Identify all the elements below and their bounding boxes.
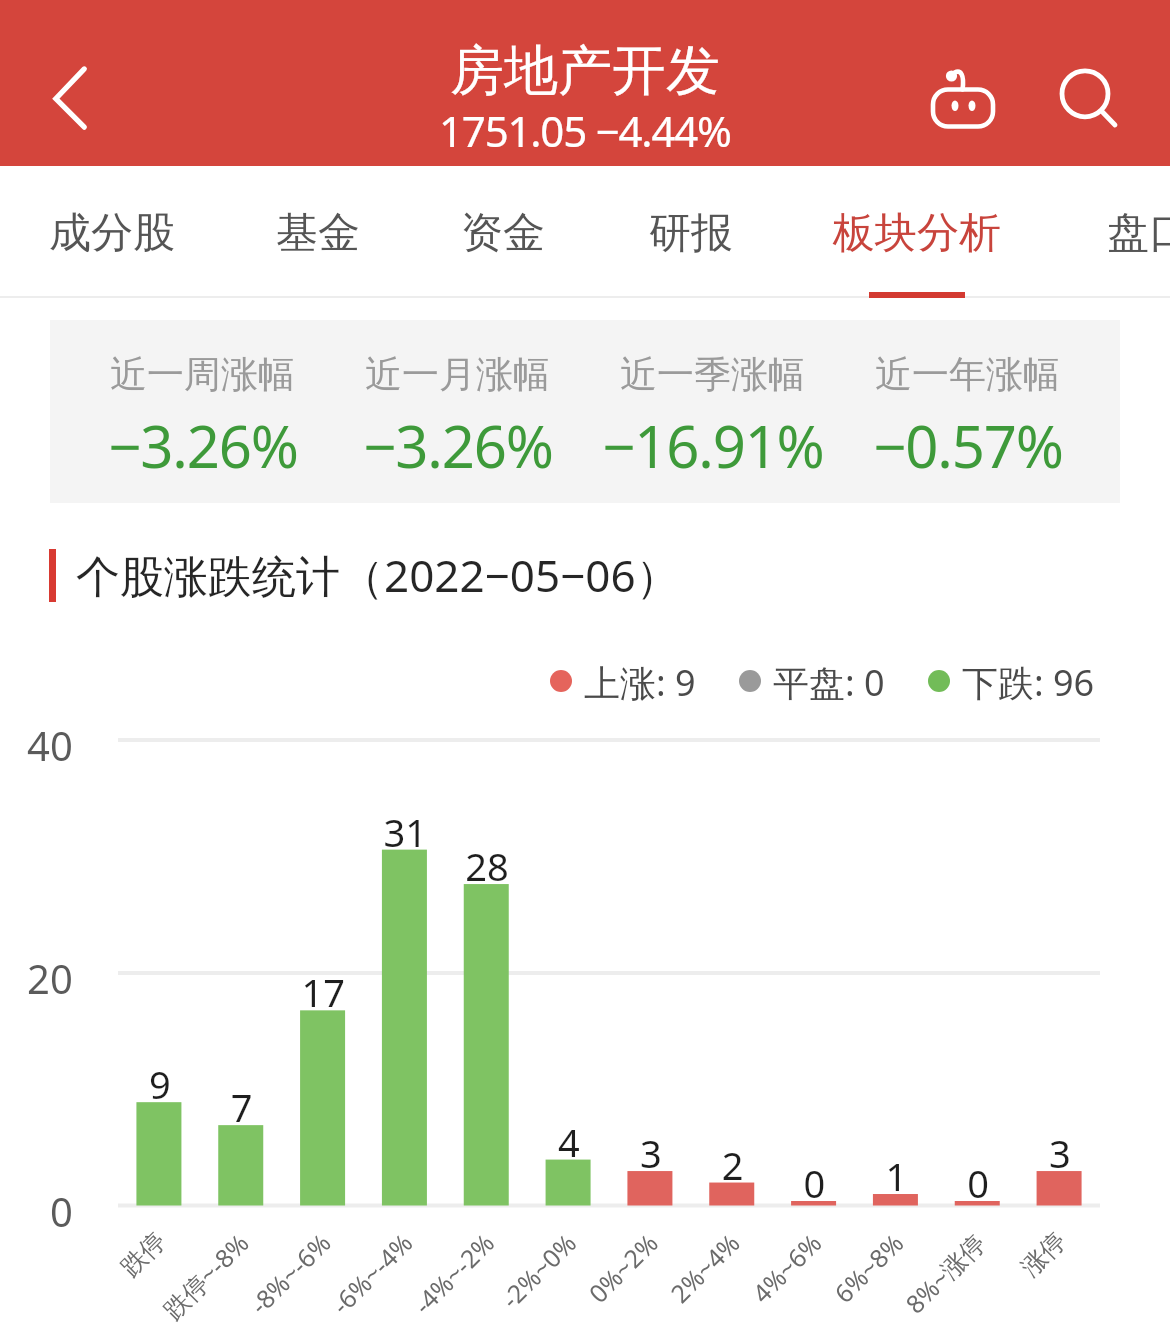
staticText: −3.26% <box>108 406 298 485</box>
staticText: 个股涨跌统计（2022−05−06） <box>76 545 680 605</box>
button[interactable]: AI assistant <box>908 53 1018 143</box>
button[interactable]: 盘口 <box>1090 166 1170 300</box>
staticText: −3.26% <box>363 406 553 485</box>
staticText: 近一季涨幅 <box>620 351 805 398</box>
button[interactable]: Search <box>1035 46 1135 142</box>
staticText: −16.91% <box>602 406 824 485</box>
staticText: −0.57% <box>873 406 1063 485</box>
staticText: 近一周涨幅 <box>110 351 295 398</box>
staticText: 房地产开发 <box>450 37 720 105</box>
button[interactable]: 成分股 <box>32 166 191 300</box>
button[interactable]: Back <box>18 40 128 150</box>
staticText: 成分股 <box>49 207 175 260</box>
button[interactable]: 板块分析 <box>819 166 1014 300</box>
staticText: 板块分析 <box>833 207 1001 260</box>
staticText: 资金 <box>461 207 545 260</box>
staticText: 近一年涨幅 <box>875 351 1060 398</box>
staticText: 1751.05 −4.44% <box>439 102 731 159</box>
staticText: 近一月涨幅 <box>365 351 550 398</box>
staticText: 盘口 <box>1107 207 1170 260</box>
staticText: 研报 <box>649 207 733 260</box>
button[interactable]: 研报 <box>632 166 749 300</box>
staticText: 基金 <box>276 207 360 260</box>
button[interactable]: 资金 <box>444 166 561 300</box>
button[interactable]: 基金 <box>262 166 373 300</box>
